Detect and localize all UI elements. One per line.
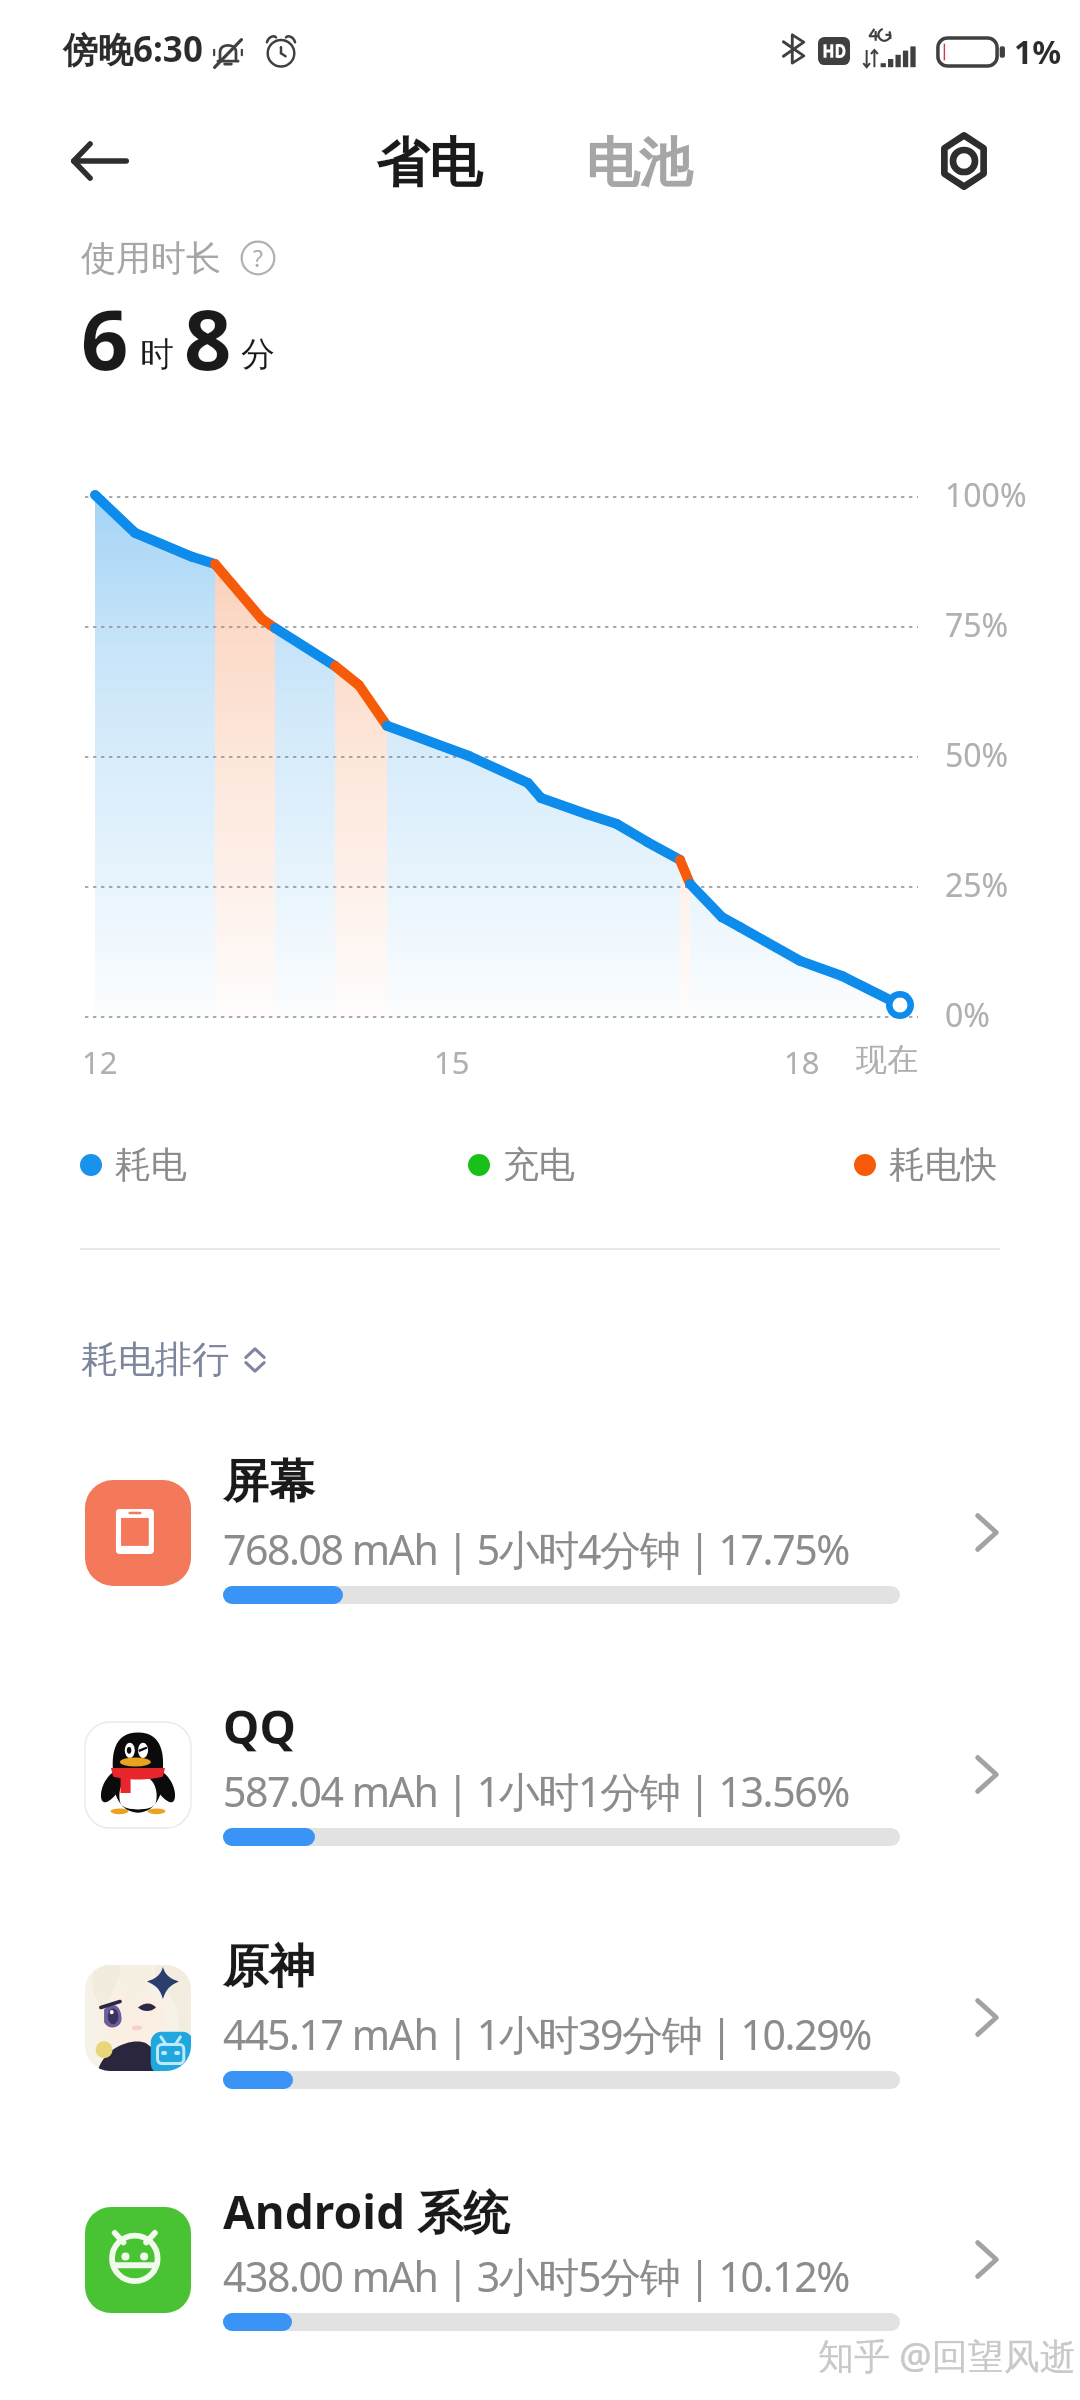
staticText: 现在: [856, 1040, 918, 1079]
staticText: 耗电快: [889, 1142, 997, 1187]
staticText: 50%: [945, 733, 1009, 777]
button[interactable]: 使用时长: [81, 236, 276, 280]
staticText: 知乎 @回望风逝: [818, 2331, 1076, 2380]
staticText: 分: [241, 333, 275, 376]
staticText: 445.17 mAh | 1小时39分钟 | 10.29%: [223, 2006, 871, 2062]
button[interactable]: 耗电排行: [81, 1336, 266, 1383]
staticText: 时: [140, 333, 174, 376]
staticText: Android 系统: [223, 2180, 509, 2243]
button[interactable]: 电池: [586, 130, 692, 197]
button[interactable]: 原神: [0, 1936, 1080, 2136]
button[interactable]: Back: [60, 121, 140, 201]
staticText: 耗电排行: [81, 1336, 229, 1383]
staticText: 100%: [945, 473, 1027, 517]
button[interactable]: 耗电快: [854, 1142, 997, 1187]
staticText: QQ: [223, 1695, 296, 1758]
staticText: 438.00 mAh | 3小时5分钟 | 10.12%: [223, 2248, 849, 2304]
staticText: 省电: [376, 130, 482, 197]
staticText: 充电: [503, 1142, 575, 1187]
staticText: 587.04 mAh | 1小时1分钟 | 13.56%: [223, 1763, 849, 1819]
button[interactable]: 充电: [468, 1142, 575, 1187]
staticText: 使用时长: [81, 236, 221, 280]
staticText: 原神: [223, 1938, 315, 1996]
staticText: 8: [184, 281, 232, 394]
staticText: 1%: [1014, 30, 1062, 74]
staticText: 傍晚6:30: [63, 25, 203, 73]
staticText: 屏幕: [223, 1453, 315, 1511]
staticText: 电池: [586, 130, 692, 197]
button[interactable]: Android 系统: [0, 2178, 1080, 2378]
staticText: 18: [784, 1041, 820, 1083]
button[interactable]: 屏幕: [0, 1451, 1080, 1651]
staticText: 0%: [945, 993, 990, 1037]
staticText: 12: [82, 1041, 118, 1083]
staticText: 6: [81, 281, 129, 394]
staticText: 耗电: [115, 1142, 187, 1187]
staticText: ?: [253, 242, 263, 273]
button[interactable]: Settings: [924, 121, 1004, 201]
button[interactable]: QQ: [0, 1693, 1080, 1893]
staticText: 15: [434, 1041, 470, 1083]
staticText: 75%: [945, 603, 1009, 647]
button[interactable]: 耗电: [80, 1142, 187, 1187]
staticText: 25%: [945, 863, 1009, 907]
staticText: 768.08 mAh | 5小时4分钟 | 17.75%: [223, 1521, 849, 1577]
button[interactable]: 省电: [376, 130, 482, 197]
